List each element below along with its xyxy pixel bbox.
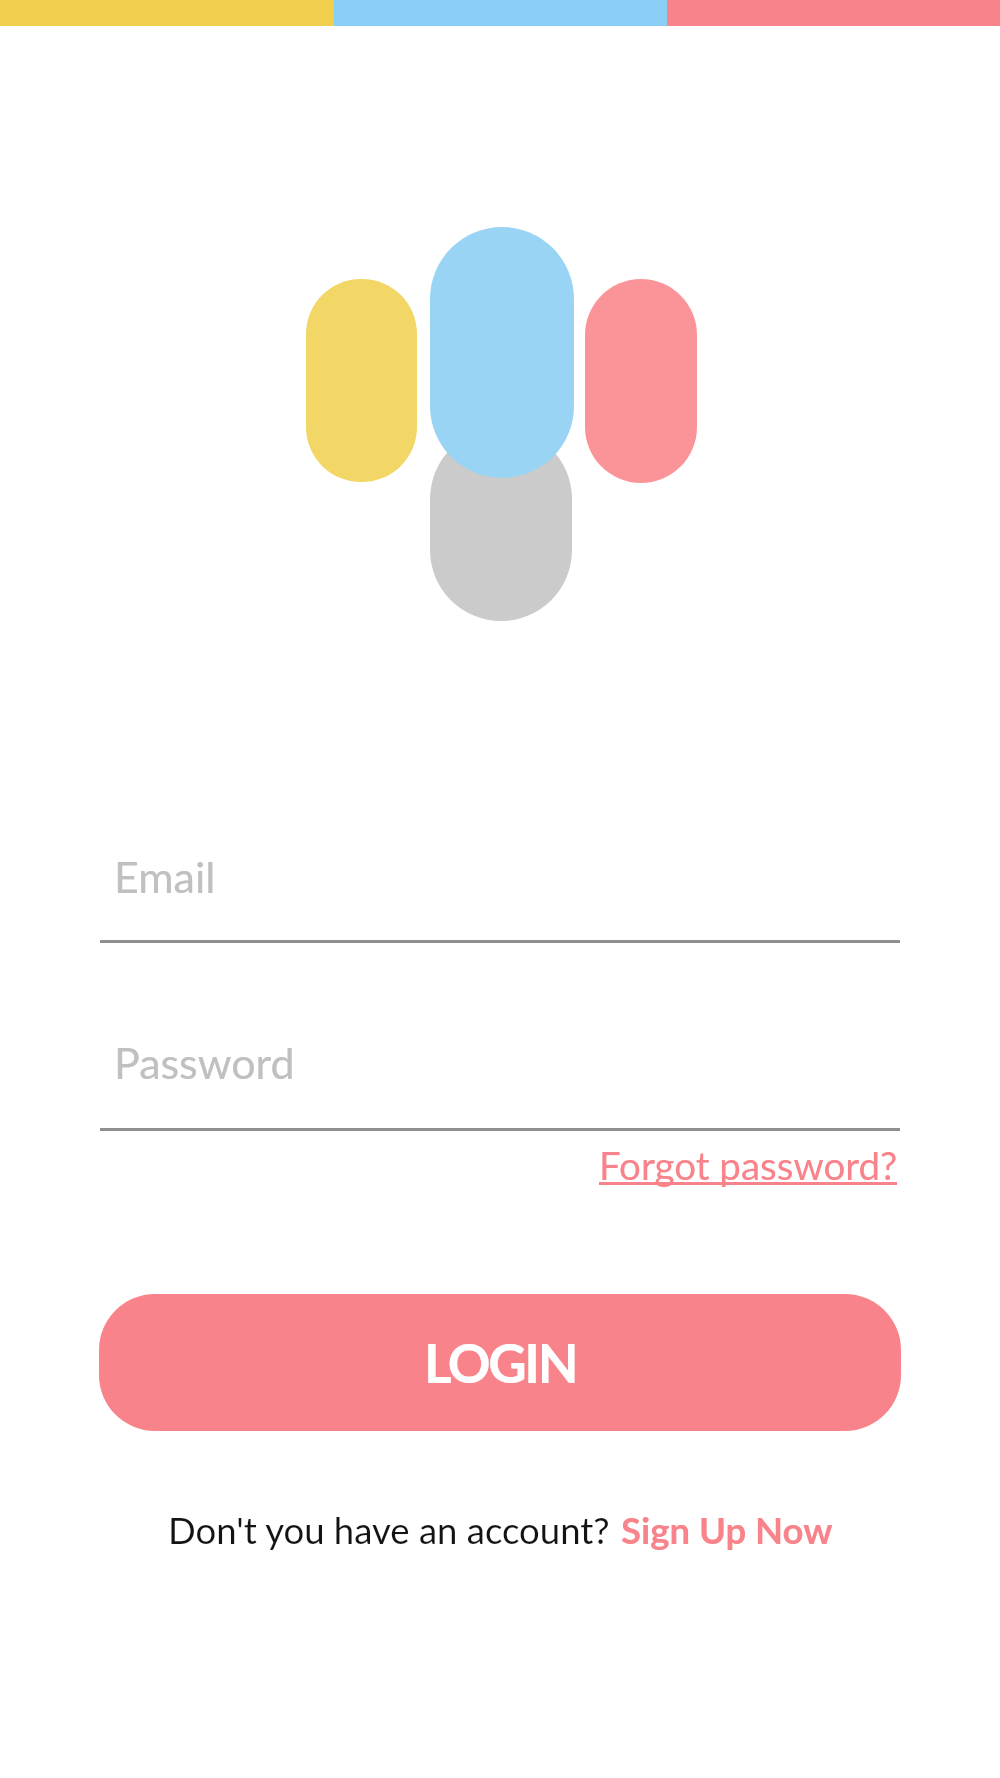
button[interactable]: Email — [100, 838, 900, 943]
staticText: Email — [114, 851, 216, 903]
staticText: Forgot password? — [599, 1142, 898, 1188]
staticText: Sign Up Now — [621, 1508, 833, 1552]
staticText: LOGIN — [424, 1331, 577, 1395]
button[interactable]: Password — [100, 1024, 900, 1131]
staticText: Don't you have an account? — [168, 1508, 610, 1552]
button[interactable]: LOGIN — [99, 1294, 901, 1431]
staticText: Password — [114, 1037, 295, 1089]
button[interactable]: Sign Up Now — [621, 1508, 833, 1552]
other: App logo — [0, 0, 1000, 1778]
button[interactable]: Forgot password? — [599, 1142, 898, 1188]
